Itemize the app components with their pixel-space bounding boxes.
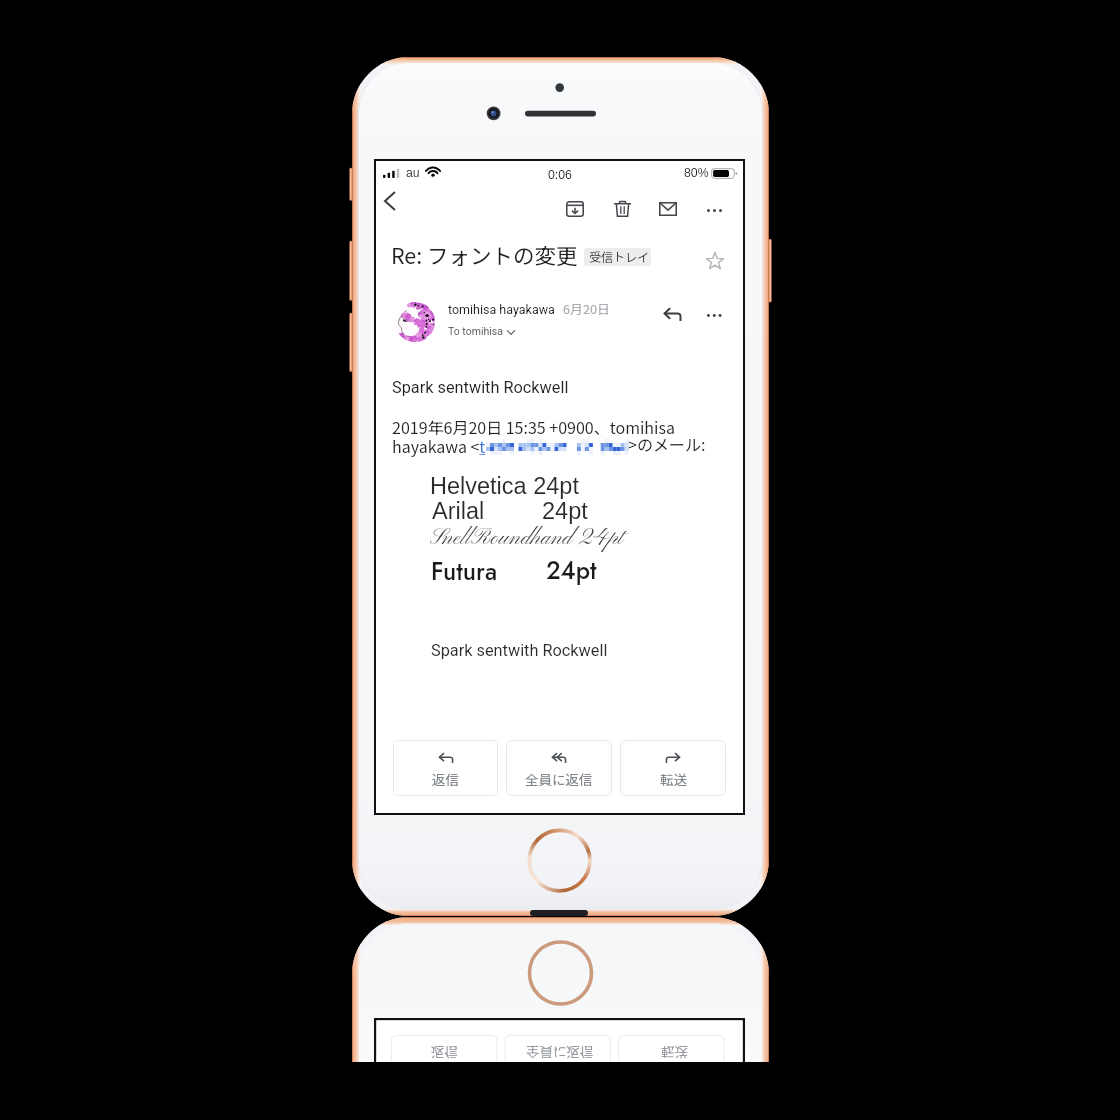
staticText: 返信 bbox=[432, 769, 459, 789]
staticText: au bbox=[406, 166, 420, 180]
staticText: 80% bbox=[684, 166, 709, 180]
staticText: 24pt bbox=[542, 498, 588, 524]
button[interactable]: 転送 bbox=[620, 740, 726, 796]
staticText: Futura bbox=[431, 554, 498, 589]
staticText: 返信 bbox=[431, 1043, 458, 1062]
staticText: tomihisa hayakawa bbox=[448, 302, 555, 317]
staticText: 2019年6月20日 15:35 +0900、tomihisa bbox=[392, 415, 675, 438]
button[interactable]: 返信 bbox=[393, 740, 498, 796]
staticText: 転送 bbox=[660, 769, 687, 789]
staticText: 24pt bbox=[546, 553, 597, 588]
staticText: hayakawa <t bbox=[392, 434, 486, 457]
button[interactable]: Star bbox=[698, 244, 732, 278]
staticText: 転送 bbox=[661, 1043, 688, 1062]
button[interactable]: Back bbox=[372, 183, 408, 219]
button[interactable]: More options bbox=[697, 298, 731, 332]
staticText: 受信トレイ bbox=[589, 248, 650, 265]
staticText: Spark sentwith Rockwell bbox=[431, 641, 608, 660]
button[interactable]: More options bbox=[696, 192, 732, 228]
staticText: 0:06 bbox=[548, 168, 572, 182]
staticText: Arilal bbox=[432, 498, 485, 524]
button[interactable]: Reply bbox=[655, 297, 689, 331]
staticText: Spark sentwith Rockwell bbox=[392, 378, 569, 397]
staticText: SnellRoundhand 24pt bbox=[430, 524, 624, 553]
staticText: 6月20日 bbox=[563, 299, 610, 318]
button[interactable]: Mark unread bbox=[650, 191, 686, 227]
staticText: Helvetica 24pt bbox=[430, 473, 579, 499]
staticText: To tomihisa bbox=[448, 325, 503, 337]
staticText: 全員に返信 bbox=[526, 1043, 594, 1062]
staticText: 全員に返信 bbox=[525, 769, 593, 789]
staticText: >のメール: bbox=[628, 432, 706, 455]
staticText: Re: フォントの変更 bbox=[391, 239, 578, 270]
button[interactable]: Archive bbox=[557, 191, 593, 227]
button[interactable]: Delete bbox=[604, 191, 640, 227]
button[interactable]: 全員に返信 bbox=[506, 740, 612, 796]
